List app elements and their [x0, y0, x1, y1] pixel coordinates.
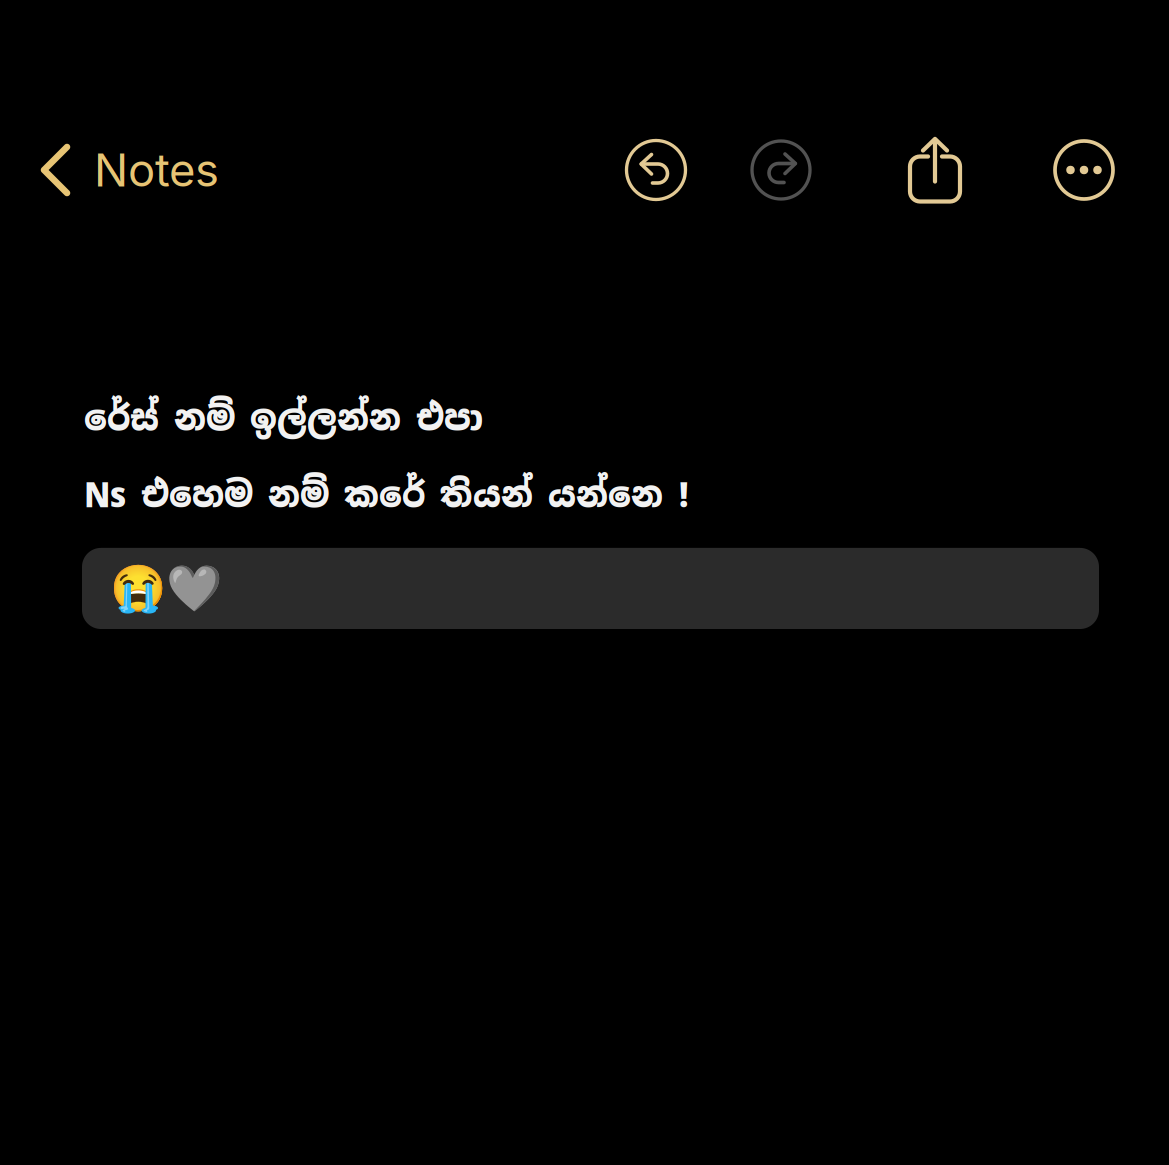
button[interactable]: Notes — [0, 124, 237, 216]
staticText: 😭🩶 — [110, 562, 222, 615]
button[interactable]: Undo — [626, 140, 685, 199]
button[interactable]: Redo — [752, 141, 810, 199]
staticText: රේස් නම් ඉල්ලන්න එපා — [84, 394, 483, 441]
button[interactable]: Share — [908, 136, 962, 203]
button[interactable]: More — [1055, 141, 1113, 199]
staticText: Notes — [94, 143, 219, 197]
staticText: Ns එහෙම නම් කරේ තියන් යන්නෙ ! — [84, 471, 690, 518]
